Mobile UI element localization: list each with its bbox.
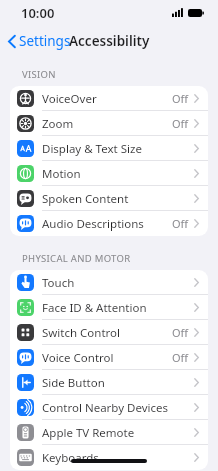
staticText: Touch xyxy=(42,275,194,291)
button[interactable]: Apple TV Remote xyxy=(10,420,208,445)
staticText: Apple TV Remote xyxy=(42,425,194,441)
staticText: PHYSICAL AND MOTOR xyxy=(22,252,131,265)
button[interactable]: Settings xyxy=(0,28,79,54)
staticText: Motion xyxy=(42,166,194,182)
staticText: 10:00 xyxy=(21,4,55,22)
staticText: Voice Control xyxy=(42,350,172,366)
staticText: Off xyxy=(172,325,189,340)
button[interactable]: Switch Control xyxy=(10,320,208,345)
staticText: VoiceOver xyxy=(42,91,172,107)
button[interactable]: Voice Control xyxy=(10,345,208,370)
button[interactable]: Motion xyxy=(10,161,208,186)
staticText: Accessibility xyxy=(69,32,150,50)
staticText: Settings xyxy=(19,32,71,50)
button[interactable]: Display & Text Size xyxy=(10,136,208,161)
staticText: Spoken Content xyxy=(42,191,194,207)
staticText: Keyboards xyxy=(42,450,194,466)
staticText: Display & Text Size xyxy=(42,141,194,157)
button[interactable]: Zoom xyxy=(10,111,208,136)
staticText: Off xyxy=(172,216,189,231)
button[interactable]: Audio Descriptions xyxy=(10,211,208,236)
button[interactable]: Touch xyxy=(10,270,208,295)
staticText: Off xyxy=(172,116,189,131)
button[interactable]: Spoken Content xyxy=(10,186,208,211)
staticText: Off xyxy=(172,350,189,365)
staticText: Off xyxy=(172,91,189,106)
button[interactable]: VoiceOver xyxy=(10,86,208,111)
staticText: Zoom xyxy=(42,116,172,132)
button[interactable]: Side Button xyxy=(10,370,208,395)
staticText: Switch Control xyxy=(42,325,172,341)
button[interactable]: Control Nearby Devices xyxy=(10,395,208,420)
staticText: VISION xyxy=(22,68,56,81)
button[interactable]: Keyboards xyxy=(10,445,208,470)
staticText: Control Nearby Devices xyxy=(42,400,194,416)
button[interactable]: Face ID & Attention xyxy=(10,295,208,320)
staticText: Audio Descriptions xyxy=(42,216,172,232)
staticText: Face ID & Attention xyxy=(42,300,194,316)
staticText: Side Button xyxy=(42,375,194,391)
